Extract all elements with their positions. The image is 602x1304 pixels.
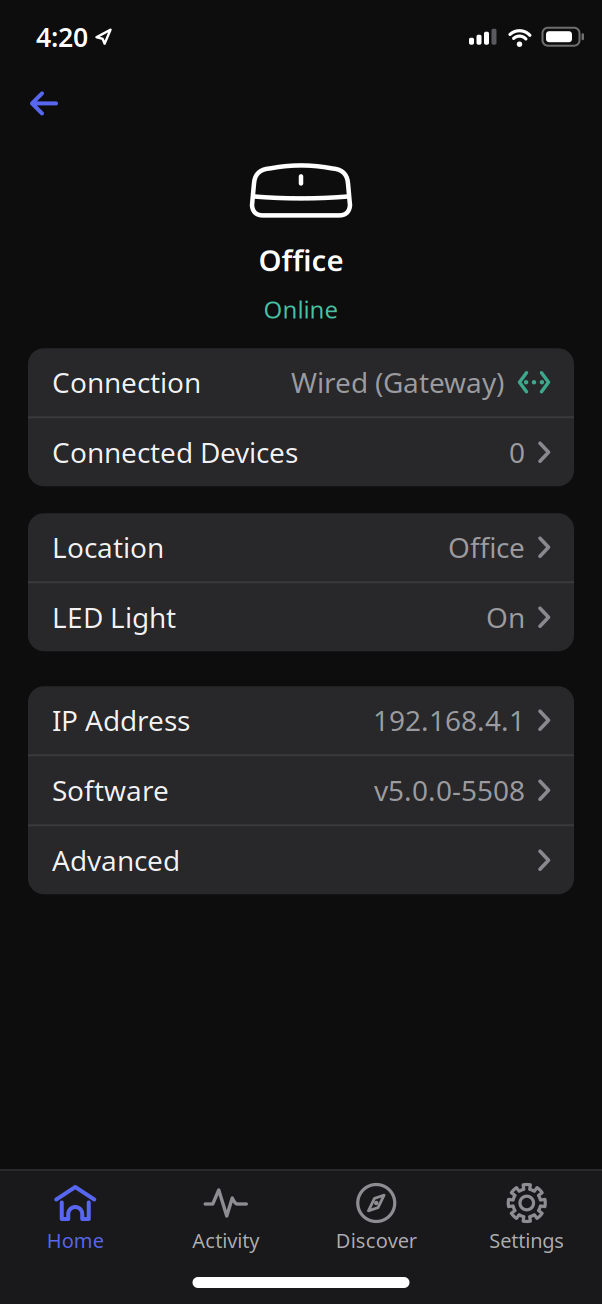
staticText: Discover <box>336 1227 417 1254</box>
staticText: Location <box>52 529 164 566</box>
button[interactable]: Back <box>30 91 58 115</box>
staticText: Connection <box>52 364 201 401</box>
staticText: Software <box>52 772 169 809</box>
button[interactable]: Connected Devices <box>28 418 574 486</box>
staticText: Wired (Gateway) <box>291 364 504 401</box>
button[interactable]: LED Light <box>28 583 574 651</box>
staticText: Online <box>263 293 338 325</box>
button[interactable]: Settings <box>451 1185 602 1254</box>
staticText: Activity <box>192 1227 259 1254</box>
staticText: Settings <box>489 1227 564 1254</box>
staticText: Home <box>47 1227 104 1254</box>
staticText: 0 <box>509 434 525 471</box>
staticText: LED Light <box>52 599 176 636</box>
staticText: IP Address <box>52 702 190 739</box>
button[interactable]: Software <box>28 756 574 824</box>
staticText: 192.168.4.1 <box>373 702 525 739</box>
button[interactable]: Location <box>28 513 574 581</box>
button[interactable]: Discover <box>301 1185 451 1254</box>
button[interactable]: Connection <box>28 348 574 416</box>
staticText: Advanced <box>52 842 180 879</box>
button[interactable]: Advanced <box>28 826 574 894</box>
staticText: On <box>486 599 525 636</box>
staticText: Office <box>448 529 525 566</box>
staticText: Office <box>258 240 343 279</box>
staticText: Connected Devices <box>52 434 298 471</box>
button[interactable]: IP Address <box>28 686 574 754</box>
staticText: 4:20 <box>36 19 88 54</box>
staticText: v5.0.0-5508 <box>374 772 525 809</box>
button[interactable]: Home <box>0 1185 150 1254</box>
button[interactable]: Activity <box>150 1185 301 1254</box>
